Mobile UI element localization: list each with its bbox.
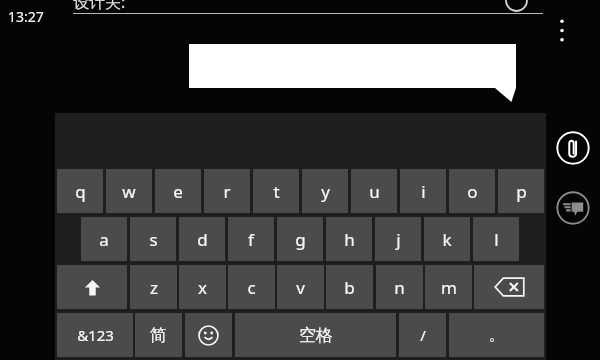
staticText: r <box>223 180 231 203</box>
button[interactable]: Messages <box>556 191 590 225</box>
staticText: u <box>369 180 380 203</box>
button[interactable]: 。 <box>449 313 544 357</box>
button[interactable]: t <box>253 169 299 213</box>
button[interactable]: e <box>155 169 201 213</box>
staticText: y <box>321 180 330 203</box>
button[interactable]: s <box>130 217 176 261</box>
staticText: 设计关: <box>73 0 126 13</box>
staticText: q <box>75 180 86 203</box>
button[interactable]: Backspace <box>474 265 544 309</box>
button[interactable]: i <box>400 169 446 213</box>
staticText: l <box>494 228 499 251</box>
staticText: x <box>198 276 207 299</box>
staticText: i <box>421 180 426 203</box>
staticText: b <box>344 276 355 299</box>
button[interactable]: o <box>449 169 495 213</box>
staticText: w <box>122 180 136 203</box>
button[interactable]: &123 <box>57 313 133 357</box>
staticText: &123 <box>77 325 114 345</box>
staticText: d <box>197 228 208 251</box>
staticText: 13:27 <box>8 7 44 26</box>
staticText: c <box>247 276 256 299</box>
staticText: 空格 <box>299 325 333 346</box>
button[interactable]: 简 <box>135 313 182 357</box>
staticText: h <box>344 228 355 251</box>
button[interactable]: p <box>498 169 544 213</box>
staticText: k <box>442 228 452 251</box>
button[interactable]: u <box>351 169 397 213</box>
button[interactable]: 设计关: <box>73 0 493 13</box>
button[interactable]: g <box>277 217 323 261</box>
staticText: n <box>394 276 405 299</box>
staticText: z <box>150 276 158 299</box>
button[interactable]: f <box>228 217 274 261</box>
button[interactable]: / <box>399 313 446 357</box>
staticText: g <box>295 228 306 251</box>
button[interactable]: q <box>57 169 103 213</box>
button[interactable]: j <box>375 217 421 261</box>
button[interactable]: v <box>277 265 324 309</box>
button[interactable]: h <box>326 217 372 261</box>
button[interactable]: m <box>425 265 472 309</box>
staticText: t <box>273 180 280 203</box>
button[interactable]: b <box>326 265 373 309</box>
staticText: 。 <box>489 326 504 345</box>
staticText: o <box>467 180 478 203</box>
staticText: 简 <box>150 325 167 346</box>
button[interactable]: r <box>204 169 250 213</box>
button[interactable]: z <box>130 265 177 309</box>
staticText: a <box>99 228 109 251</box>
staticText: v <box>296 276 305 299</box>
staticText: s <box>149 228 158 251</box>
button[interactable]: Shift <box>57 265 127 309</box>
button[interactable]: Emoji <box>185 313 232 357</box>
button[interactable]: d <box>179 217 225 261</box>
button[interactable]: c <box>228 265 275 309</box>
button[interactable]: Attach <box>556 131 590 165</box>
staticText: m <box>441 276 457 299</box>
staticText: p <box>516 180 527 203</box>
button[interactable]: 空格 <box>235 313 396 357</box>
button[interactable]: n <box>376 265 423 309</box>
button[interactable]: More options <box>549 10 575 50</box>
staticText: / <box>420 325 426 345</box>
button[interactable]: y <box>302 169 348 213</box>
button[interactable]: x <box>179 265 226 309</box>
staticText: e <box>173 180 183 203</box>
button[interactable]: w <box>106 169 152 213</box>
staticText: j <box>396 228 401 251</box>
button[interactable]: a <box>81 217 127 261</box>
button[interactable]: l <box>473 217 519 261</box>
staticText: f <box>248 228 254 251</box>
button[interactable]: k <box>424 217 470 261</box>
